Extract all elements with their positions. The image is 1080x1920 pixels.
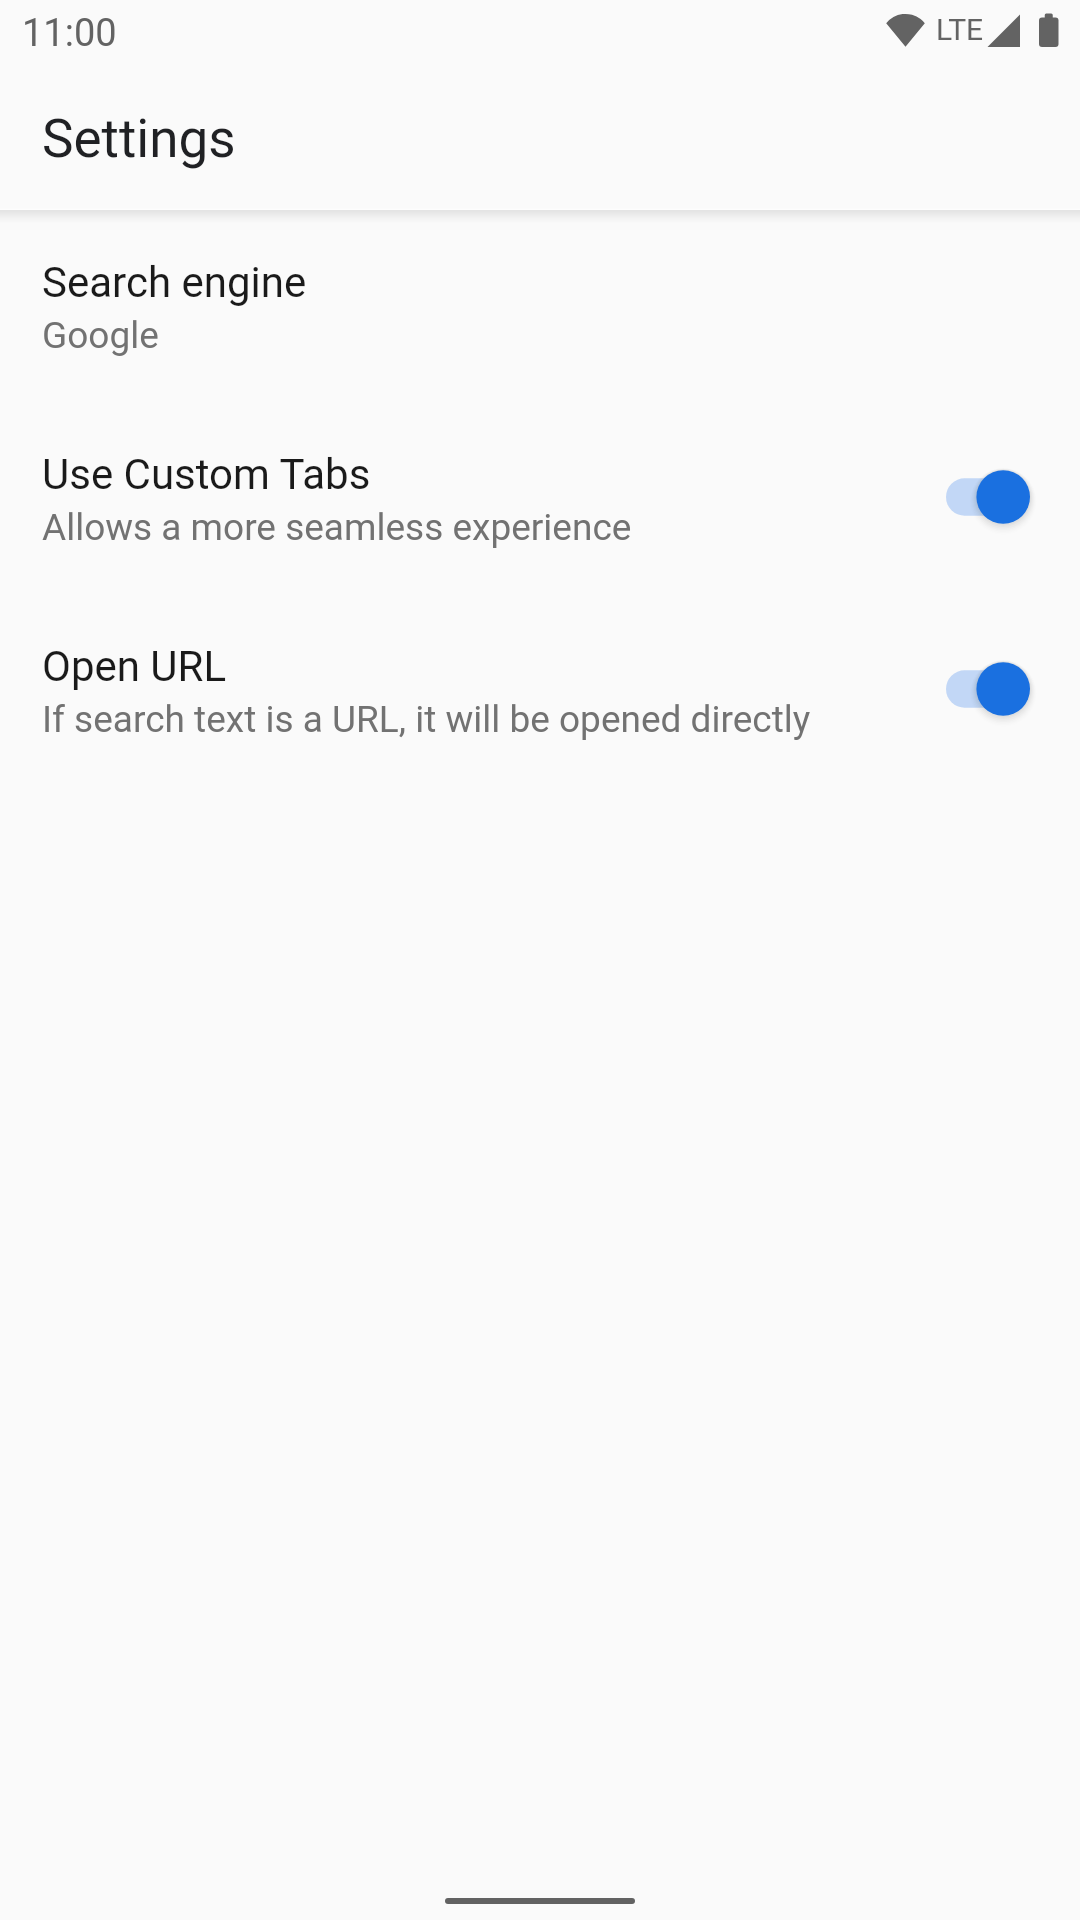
staticText: Allows a more seamless experience xyxy=(42,506,632,549)
button[interactable]: Open URL, on xyxy=(946,641,1080,737)
button[interactable]: Open URL xyxy=(0,593,1080,785)
button[interactable]: Search engine xyxy=(0,209,1080,401)
staticText: Search engine xyxy=(42,258,307,307)
button[interactable]: Use Custom Tabs, on xyxy=(946,449,1080,545)
other: Wi-Fi, LTE, cellular signal and battery … xyxy=(0,0,1080,70)
staticText: LTE xyxy=(936,12,984,47)
staticText: 11:00 xyxy=(22,11,117,56)
staticText: If search text is a URL, it will be open… xyxy=(42,698,811,741)
staticText: Settings xyxy=(42,108,236,170)
button[interactable]: Use Custom Tabs xyxy=(0,401,1080,593)
staticText: Google xyxy=(42,314,159,357)
staticText: Open URL xyxy=(42,642,227,691)
staticText: Use Custom Tabs xyxy=(42,450,371,499)
